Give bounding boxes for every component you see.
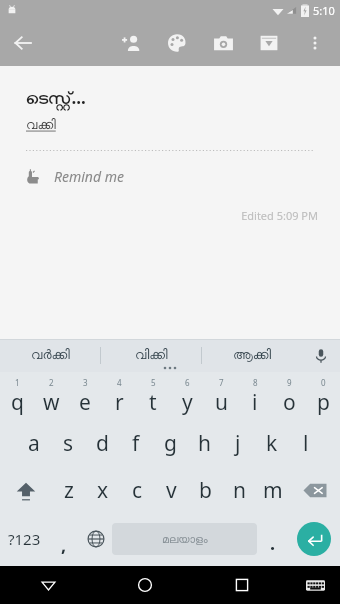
staticText: n bbox=[233, 476, 246, 505]
button[interactable]: 5 bbox=[136, 374, 170, 420]
button[interactable]: Add collaborator bbox=[108, 20, 154, 66]
button[interactable]: g bbox=[153, 420, 187, 467]
staticText: 1 bbox=[15, 377, 20, 388]
button[interactable]: k bbox=[255, 420, 289, 467]
button[interactable]: Backspace bbox=[290, 467, 340, 514]
staticText: , bbox=[61, 533, 67, 558]
button[interactable]: h bbox=[187, 420, 221, 467]
staticText: Edited 5:09 PM bbox=[0, 208, 318, 223]
staticText: s bbox=[63, 429, 74, 458]
button[interactable]: n bbox=[222, 467, 256, 514]
button[interactable]: Back bbox=[0, 566, 96, 604]
staticText: b bbox=[199, 476, 212, 505]
button[interactable]: 6 bbox=[170, 374, 204, 420]
staticText: l bbox=[303, 429, 309, 458]
button[interactable]: d bbox=[85, 420, 119, 467]
staticText: 5 bbox=[151, 377, 156, 388]
button[interactable]: 1 bbox=[0, 374, 34, 420]
button[interactable]: j bbox=[221, 420, 255, 467]
staticText: k bbox=[266, 429, 278, 458]
staticText: ?123 bbox=[8, 529, 41, 549]
button[interactable]: c bbox=[120, 467, 154, 514]
staticText: m bbox=[263, 476, 283, 505]
staticText: ആക്കി bbox=[233, 349, 272, 362]
button[interactable]: a bbox=[17, 420, 51, 467]
button[interactable]: Voice input bbox=[302, 339, 340, 372]
staticText: g bbox=[164, 429, 177, 458]
button[interactable]: 7 bbox=[204, 374, 238, 420]
button[interactable]: Change color bbox=[154, 20, 200, 66]
staticText: u bbox=[215, 388, 228, 417]
button[interactable]: ആക്കി bbox=[202, 339, 302, 372]
button[interactable]: വർക്കി bbox=[0, 339, 100, 372]
staticText: 9 bbox=[287, 377, 292, 388]
button[interactable]: Back bbox=[0, 20, 46, 66]
staticText: 8 bbox=[253, 377, 258, 388]
button[interactable]: , bbox=[48, 514, 79, 564]
button[interactable]: വിക്കി bbox=[101, 339, 201, 372]
staticText: r bbox=[115, 388, 124, 417]
button[interactable]: More options bbox=[292, 20, 338, 66]
button[interactable]: f bbox=[119, 420, 153, 467]
staticText: . bbox=[270, 531, 276, 556]
staticText: 0 bbox=[321, 377, 326, 388]
staticText: i bbox=[252, 388, 258, 417]
button[interactable]: Recent apps bbox=[193, 566, 290, 604]
staticText: e bbox=[79, 388, 91, 417]
button[interactable]: ?123 bbox=[0, 514, 48, 564]
button[interactable]: s bbox=[51, 420, 85, 467]
button[interactable]: 0 bbox=[306, 374, 340, 420]
button[interactable]: Shift bbox=[0, 467, 51, 514]
button[interactable]: ടെസ്റ്റ്... bbox=[26, 86, 86, 109]
staticText: 2 bbox=[49, 377, 54, 388]
staticText: Remind me bbox=[54, 167, 124, 186]
staticText: o bbox=[283, 388, 296, 417]
button[interactable]: z bbox=[51, 467, 86, 514]
staticText: c bbox=[132, 476, 143, 505]
button[interactable]: Archive bbox=[246, 20, 292, 66]
staticText: 3 bbox=[83, 377, 88, 388]
button[interactable]: വക്കി bbox=[26, 119, 56, 132]
staticText: വർക്കി bbox=[31, 349, 70, 362]
staticText: w bbox=[43, 388, 60, 417]
button[interactable]: m bbox=[256, 467, 290, 514]
button[interactable]: 3 bbox=[68, 374, 102, 420]
button[interactable]: മലയാളം bbox=[112, 523, 257, 555]
staticText: 5:10 bbox=[313, 3, 335, 18]
staticText: p bbox=[317, 388, 330, 417]
staticText: a bbox=[28, 429, 40, 458]
button[interactable]: Add image bbox=[200, 20, 246, 66]
staticText: q bbox=[11, 388, 24, 417]
button[interactable]: Change language bbox=[79, 514, 112, 564]
staticText: 7 bbox=[219, 377, 224, 388]
staticText: y bbox=[182, 388, 193, 417]
staticText: x bbox=[97, 476, 109, 505]
staticText: h bbox=[198, 429, 211, 458]
button[interactable]: x bbox=[86, 467, 120, 514]
button[interactable]: Switch keyboard bbox=[290, 566, 340, 604]
button[interactable]: Remind me bbox=[0, 165, 340, 188]
button[interactable]: b bbox=[188, 467, 222, 514]
staticText: v bbox=[166, 476, 177, 505]
button[interactable]: Enter bbox=[288, 514, 340, 564]
staticText: f bbox=[132, 429, 140, 458]
button[interactable]: 8 bbox=[238, 374, 272, 420]
staticText: d bbox=[96, 429, 109, 458]
button[interactable]: . bbox=[257, 514, 288, 564]
staticText: 6 bbox=[185, 377, 190, 388]
button[interactable]: l bbox=[289, 420, 323, 467]
button[interactable]: Home bbox=[96, 566, 193, 604]
staticText: വിക്കി bbox=[135, 349, 168, 362]
staticText: മലയാളം bbox=[162, 534, 208, 545]
staticText: z bbox=[64, 476, 74, 505]
button[interactable]: 9 bbox=[272, 374, 306, 420]
staticText: t bbox=[149, 388, 157, 417]
staticText: j bbox=[235, 429, 241, 458]
staticText: 4 bbox=[117, 377, 122, 388]
button[interactable]: 4 bbox=[102, 374, 136, 420]
button[interactable]: v bbox=[154, 467, 188, 514]
button[interactable]: 2 bbox=[34, 374, 68, 420]
